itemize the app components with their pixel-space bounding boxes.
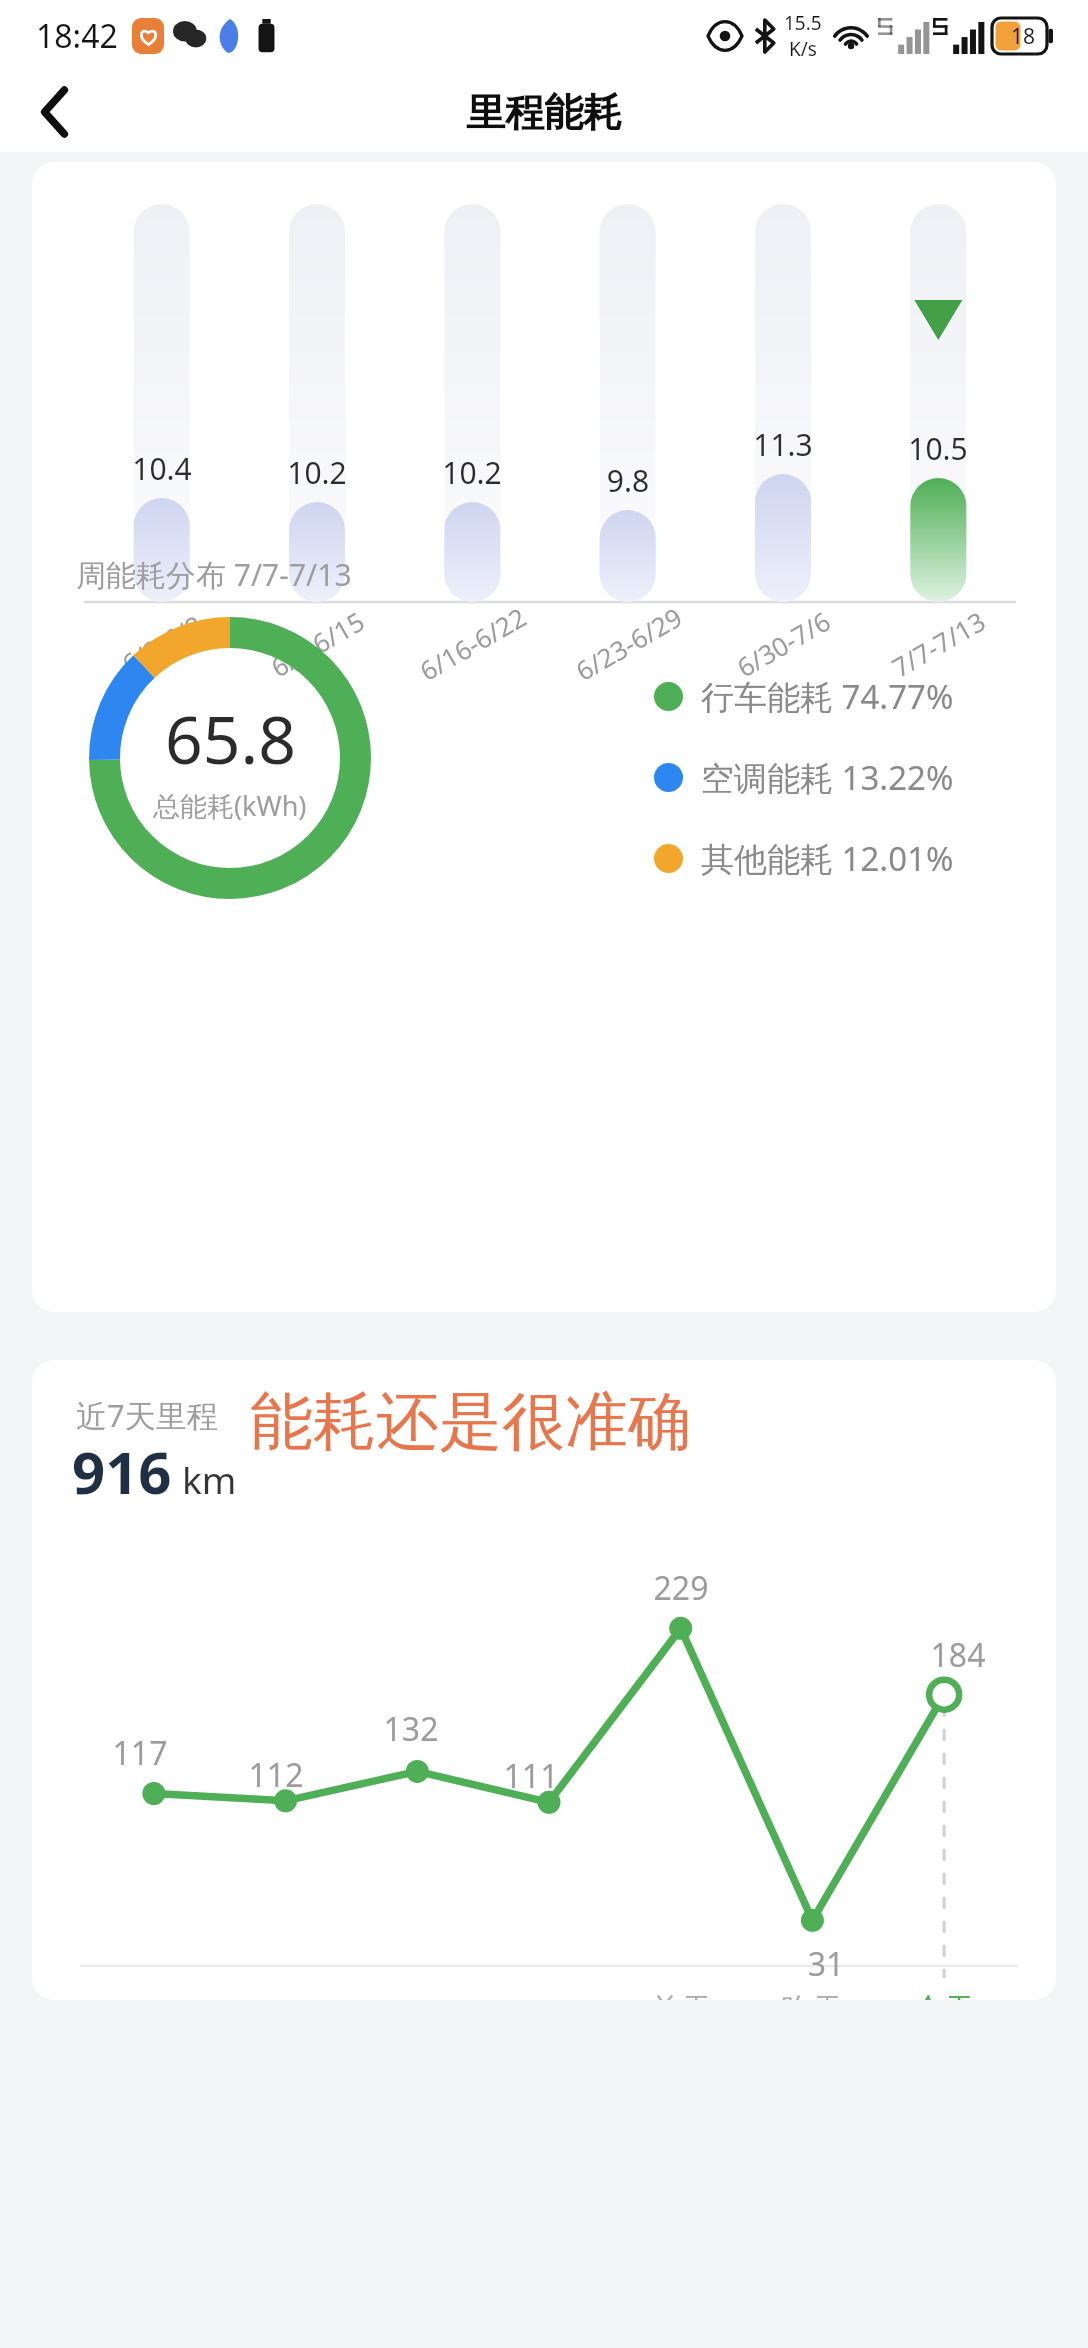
staticText: 10.2: [417, 452, 527, 493]
staticText: km: [182, 1454, 237, 1504]
staticText: 111: [471, 1754, 591, 1798]
staticText: 117: [80, 1731, 200, 1775]
staticText: 11.3: [728, 424, 838, 465]
staticText: 916: [72, 1432, 172, 1511]
staticText: 65.8: [165, 693, 296, 783]
button[interactable]: 空调能耗 13.22%: [654, 755, 954, 800]
staticText: 229: [621, 1566, 741, 1610]
staticText: 空调能耗 13.22%: [701, 755, 954, 800]
staticText: 184: [898, 1633, 1018, 1677]
button[interactable]: Back: [22, 79, 88, 145]
staticText: 10.2: [262, 452, 372, 493]
staticText: 10.4: [107, 448, 217, 489]
staticText: 10.5: [883, 428, 993, 469]
staticText: 能耗还是很准确: [250, 1382, 691, 1461]
staticText: 112: [216, 1753, 336, 1797]
staticText: 行车能耗 74.77%: [701, 674, 954, 719]
staticText: 里程能耗: [466, 88, 622, 137]
staticText: 6/23-6/29: [569, 599, 688, 688]
staticText: 31: [766, 1942, 886, 1986]
staticText: 近7天里程: [76, 1394, 218, 1436]
staticText: 18:42: [36, 14, 118, 58]
staticText: 其他能耗 12.01%: [701, 836, 954, 881]
staticText: 7/7-7/13: [885, 603, 992, 684]
staticText: 前天: [621, 1990, 741, 2000]
staticText: 9.8: [573, 460, 683, 501]
staticText: 18: [1011, 22, 1036, 51]
staticText: 6/2-6/8: [115, 606, 209, 681]
staticText: 昨天: [752, 1990, 872, 2000]
staticText: 15.5: [784, 10, 822, 36]
staticText: K/s: [789, 36, 817, 62]
staticText: 周能耗分布 7/7-7/13: [76, 554, 352, 595]
staticText: 132: [351, 1707, 471, 1751]
staticText: 6/16-6/22: [413, 599, 532, 688]
button[interactable]: 行车能耗 74.77%: [654, 674, 954, 719]
staticText: 今天: [884, 1990, 1004, 2000]
staticText: 总能耗(kWh): [153, 787, 307, 824]
staticText: 6/9-6/15: [264, 603, 371, 684]
staticText: 6/30-7/6: [730, 603, 837, 684]
button[interactable]: 其他能耗 12.01%: [654, 836, 954, 881]
